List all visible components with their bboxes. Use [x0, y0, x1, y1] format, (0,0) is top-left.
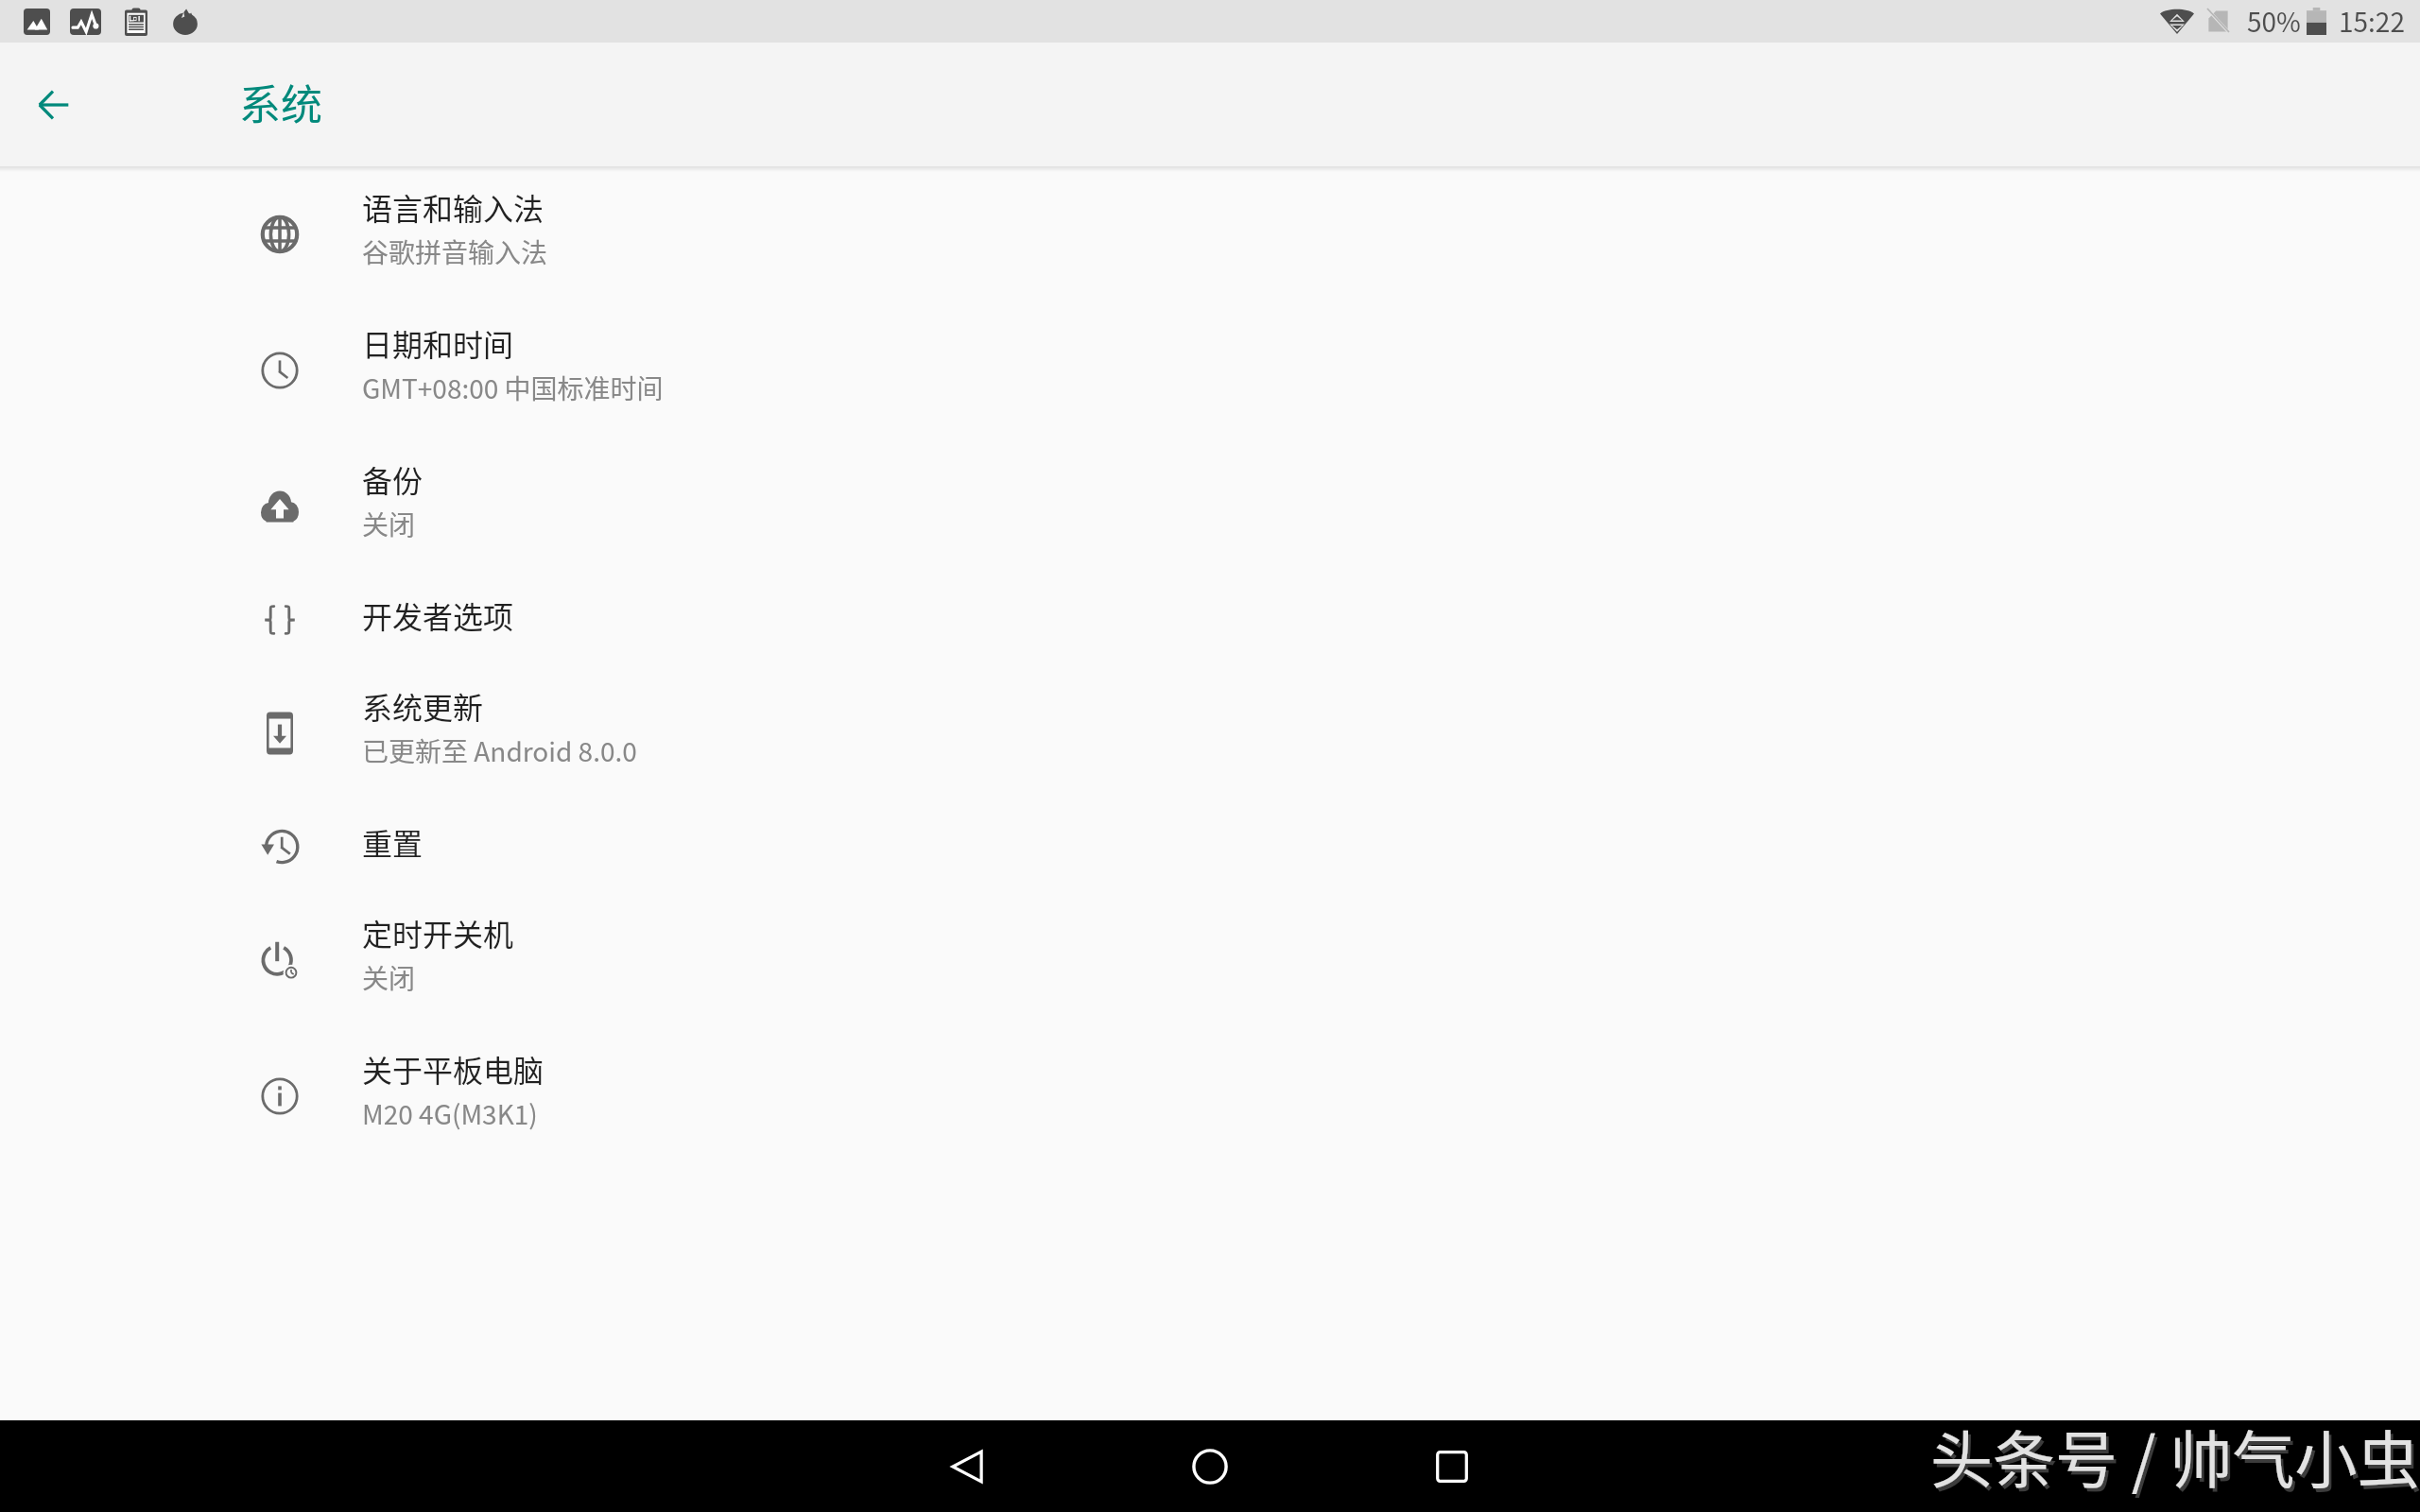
- staticText: 开发者选项: [362, 593, 514, 637]
- staticText: 15:22: [2339, 2, 2405, 41]
- button[interactable]: Recent apps: [1414, 1429, 1490, 1504]
- staticText: 语言和输入法: [362, 185, 544, 229]
- button[interactable]: 语言和输入法: [0, 166, 2420, 302]
- button[interactable]: 系统更新: [0, 665, 2420, 801]
- staticText: 头条号 / 帅气小虫: [1933, 1414, 2420, 1504]
- staticText: 关闭: [362, 958, 416, 997]
- staticText: 系统更新: [362, 684, 484, 728]
- button[interactable]: 关于平板电脑: [0, 1028, 2420, 1164]
- staticText: 已更新至 Android 8.0.0: [362, 731, 637, 770]
- staticText: 关于平板电脑: [362, 1047, 544, 1091]
- staticText: 备份: [362, 457, 423, 501]
- staticText: M20 4G(M3K1): [362, 1094, 538, 1133]
- staticText: 50%: [2247, 2, 2301, 41]
- button[interactable]: 备份: [0, 438, 2420, 575]
- button[interactable]: 重置: [0, 801, 2420, 892]
- button[interactable]: 开发者选项: [0, 575, 2420, 665]
- staticText: 谷歌拼音输入法: [362, 232, 548, 271]
- staticText: 重置: [362, 820, 423, 864]
- button[interactable]: Back: [929, 1429, 1005, 1504]
- staticText: 头条号 / 帅气小虫: [1930, 1410, 2420, 1501]
- button[interactable]: 定时开关机: [0, 892, 2420, 1028]
- button[interactable]: Home: [1172, 1429, 1248, 1504]
- button[interactable]: Back: [15, 67, 91, 143]
- staticText: 关闭: [362, 505, 416, 543]
- staticText: 系统: [239, 72, 322, 132]
- staticText: GMT+08:00 中国标准时间: [362, 369, 664, 407]
- button[interactable]: 日期和时间: [0, 302, 2420, 438]
- staticText: 日期和时间: [362, 321, 514, 365]
- staticText: 定时开关机: [362, 911, 514, 954]
